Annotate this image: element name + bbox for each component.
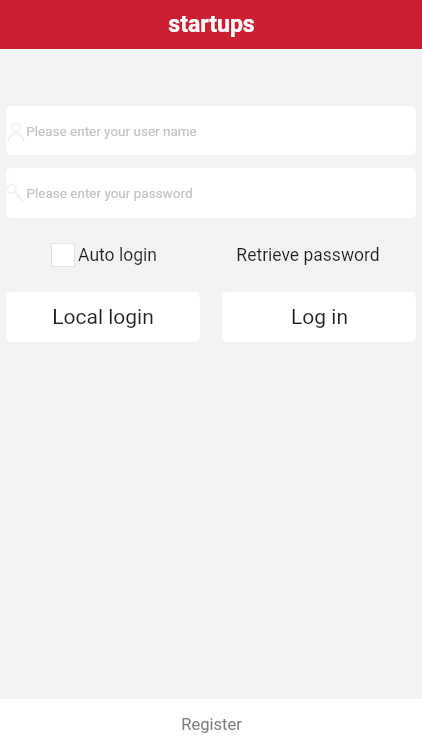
- button[interactable]: Log in: [222, 292, 416, 342]
- staticText: Retrieve password: [236, 245, 380, 266]
- button[interactable]: Register: [0, 699, 422, 750]
- button[interactable]: User name: [6, 106, 416, 155]
- staticText: Please enter your password: [26, 185, 193, 201]
- other: Password: [6, 182, 26, 204]
- button[interactable]: Retrieve password: [236, 245, 380, 266]
- staticText: Log in: [291, 305, 348, 330]
- button[interactable]: Password: [6, 168, 416, 218]
- other: User name: [6, 120, 26, 142]
- staticText: startups: [168, 11, 255, 38]
- staticText: Please enter your user name: [26, 123, 197, 139]
- staticText: Local login: [52, 305, 154, 330]
- staticText: Auto login: [78, 245, 157, 266]
- button[interactable]: Auto login: [51, 243, 157, 267]
- button[interactable]: Local login: [6, 292, 200, 342]
- staticText: Register: [181, 715, 242, 734]
